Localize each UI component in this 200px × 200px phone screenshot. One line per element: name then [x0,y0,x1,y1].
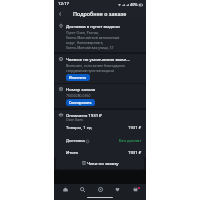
button[interactable]: Скопировать [66,99,95,106]
button[interactable]: Home [59,184,72,195]
staticText: 12:17 [58,0,69,6]
staticText: 40% [130,2,138,7]
staticText: Чаевые по умолчанию выкл... [66,56,130,62]
button[interactable]: Cart [129,184,142,195]
staticText: Чеки по заказу [87,160,119,166]
staticText: Подробнее о заказе [73,10,127,17]
staticText: 76030280-0360 [66,93,91,98]
staticText: Включите, если хотите благодарить сотруд… [66,63,125,73]
staticText: Доставка [66,138,85,144]
staticText: Пункт Озон, Россия, Ханты-Мансийский авт… [66,30,120,50]
staticText: Доставка в пункт выдачи [66,23,120,29]
staticText: Ozon Банк [66,117,84,122]
button[interactable]: Изменить [66,74,90,81]
staticText: Оплачено 1931 ₽ [66,112,102,118]
button[interactable]: Back [55,9,64,18]
staticText: Без доплат [119,138,142,144]
staticText: 1931 ₽ [128,125,142,131]
staticText: Изменить [69,75,87,80]
staticText: Скопировать [69,100,92,105]
button[interactable]: Favorites [111,184,124,195]
staticText: 1931 ₽ [128,150,142,156]
button[interactable]: Доставка в пункт выдачи [54,19,146,52]
staticText: Итого [66,150,79,156]
staticText: Номер заказа [66,86,96,92]
button[interactable]: Чеки по заказу [56,157,144,169]
button[interactable]: Orders [94,184,107,195]
staticText: Товары, 1 ед [66,125,92,131]
button[interactable]: Search [76,184,89,195]
